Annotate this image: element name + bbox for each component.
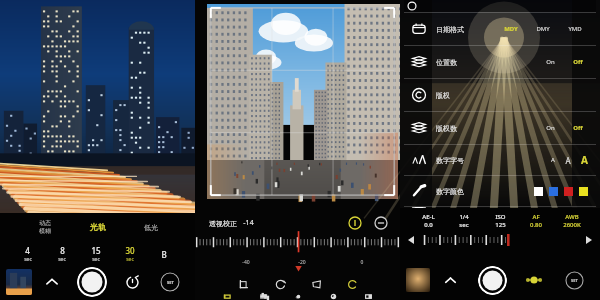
button[interactable]: Voice bbox=[404, 207, 596, 208]
button[interactable]: B bbox=[147, 249, 181, 260]
button[interactable]: 1/4 bbox=[446, 213, 482, 229]
button[interactable]: Bracketing bbox=[514, 260, 554, 300]
button[interactable]: Crop bbox=[225, 275, 262, 293]
button[interactable]: Rotate bbox=[262, 275, 298, 293]
other: Font size bbox=[410, 151, 428, 169]
button[interactable]: AF bbox=[518, 213, 554, 229]
button[interactable]: Shutter bbox=[478, 266, 507, 295]
staticText: 0.0 bbox=[424, 221, 433, 229]
button[interactable]: Settings bbox=[554, 260, 594, 300]
staticText: On bbox=[546, 58, 555, 66]
staticText: -20 bbox=[282, 259, 322, 266]
other: Copyright bbox=[410, 86, 428, 104]
button[interactable]: Geotag bbox=[404, 46, 596, 78]
staticText: ISO bbox=[495, 213, 506, 221]
staticText: 低光 bbox=[144, 223, 158, 232]
button[interactable]: AWB bbox=[554, 213, 590, 229]
other: Voice bbox=[410, 207, 428, 208]
staticText: 动态 bbox=[39, 219, 51, 227]
staticText: DMY bbox=[536, 25, 550, 33]
staticText: On bbox=[546, 207, 555, 208]
button[interactable]: Timer bbox=[113, 263, 151, 300]
staticText: 数字颜色 bbox=[436, 187, 464, 196]
button[interactable]: 光轨 bbox=[71, 222, 124, 232]
button[interactable]: Settings bbox=[151, 263, 189, 300]
button[interactable]: DMY bbox=[530, 25, 556, 33]
button[interactable]: Shutter bbox=[77, 267, 107, 297]
staticText: AWB bbox=[565, 213, 579, 221]
staticText: 30 bbox=[125, 245, 135, 256]
button[interactable]: Date format bbox=[404, 13, 596, 45]
button[interactable]: Contrast bbox=[351, 293, 386, 300]
staticText: -14 bbox=[243, 218, 254, 228]
button[interactable]: ISO bbox=[482, 213, 518, 229]
button[interactable]: Transform bbox=[209, 293, 245, 300]
button[interactable]: Font size bbox=[404, 145, 596, 175]
staticText: 透视校正 bbox=[209, 219, 237, 228]
button[interactable]: Color bbox=[404, 176, 596, 206]
button[interactable]: Expand bbox=[430, 260, 470, 300]
staticText: 8 bbox=[60, 245, 65, 256]
button[interactable]: 4 bbox=[10, 245, 45, 263]
other: Copyright data bbox=[410, 119, 428, 137]
button[interactable]: Filters bbox=[281, 293, 316, 300]
staticText: 15 bbox=[91, 245, 101, 256]
staticText: 4 bbox=[25, 245, 30, 256]
staticText: A bbox=[565, 155, 571, 166]
button[interactable]: Gallery bbox=[6, 269, 32, 295]
button[interactable]: On bbox=[540, 207, 560, 208]
button[interactable]: AE-L bbox=[410, 213, 446, 229]
staticText: 日期格式 bbox=[436, 25, 464, 34]
button[interactable]: Copyright data bbox=[404, 112, 596, 144]
staticText: 位置数 bbox=[436, 58, 457, 67]
button[interactable]: Expand bbox=[32, 263, 71, 300]
other: Geotag bbox=[410, 53, 428, 71]
other: Date format bbox=[410, 20, 428, 38]
staticText: A bbox=[551, 156, 555, 164]
staticText: 光轨 bbox=[90, 222, 106, 232]
staticText: sec bbox=[58, 256, 66, 263]
staticText: YMD bbox=[568, 25, 582, 33]
button[interactable]: On bbox=[540, 58, 560, 66]
staticText: AE-L bbox=[422, 213, 435, 221]
staticText: 2600K bbox=[563, 221, 581, 229]
staticText: AF bbox=[532, 213, 540, 221]
button[interactable]: Undo bbox=[334, 275, 370, 293]
button[interactable]: Exposure bbox=[316, 293, 351, 300]
staticText: sec bbox=[24, 256, 32, 263]
button[interactable]: Auto bbox=[348, 216, 362, 230]
staticText: 数字字号 bbox=[436, 156, 464, 165]
button[interactable]: Adjust bbox=[245, 293, 281, 300]
button[interactable]: MDY bbox=[498, 25, 524, 33]
button[interactable]: 低光 bbox=[124, 223, 177, 232]
button[interactable]: Reset bbox=[374, 216, 388, 230]
staticText: 125 bbox=[495, 221, 506, 229]
button[interactable]: Off bbox=[568, 58, 588, 66]
button[interactable]: YMD bbox=[562, 25, 588, 33]
staticText: A bbox=[581, 153, 588, 167]
staticText: sec bbox=[126, 256, 134, 263]
staticText: 0.80 bbox=[530, 221, 542, 229]
button[interactable]: 30 bbox=[113, 245, 147, 263]
button[interactable]: 15 bbox=[79, 245, 113, 263]
button[interactable]: 8 bbox=[45, 245, 79, 263]
staticText: sec bbox=[459, 221, 469, 229]
staticText: 版权 bbox=[436, 91, 450, 100]
button[interactable]: Copyright bbox=[404, 79, 596, 111]
staticText: On bbox=[546, 124, 555, 132]
staticText: sec bbox=[92, 256, 100, 263]
button[interactable]: Gallery bbox=[406, 268, 430, 292]
button[interactable]: Off bbox=[568, 124, 588, 132]
button[interactable]: On bbox=[540, 124, 560, 132]
staticText: B bbox=[161, 249, 167, 260]
staticText: Off bbox=[573, 58, 583, 66]
staticText: SET bbox=[167, 280, 174, 285]
button[interactable]: Perspective bbox=[298, 275, 334, 293]
button[interactable]: 动态 bbox=[18, 219, 71, 235]
